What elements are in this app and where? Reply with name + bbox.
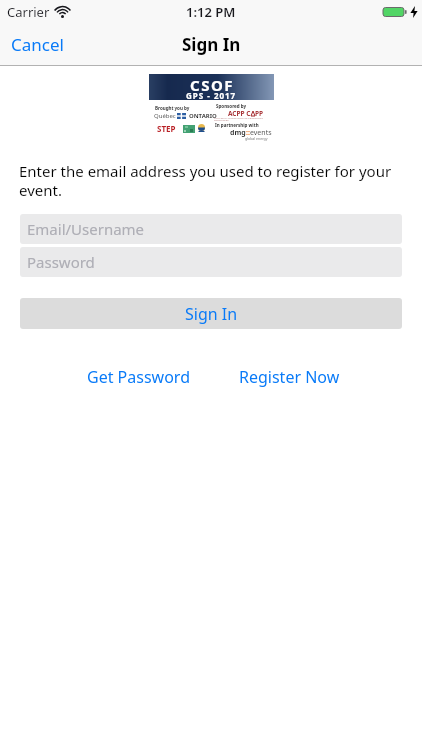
staticText: Get Password <box>87 366 190 388</box>
staticText: In partnership with <box>215 122 259 128</box>
staticText: CSOF <box>190 75 234 95</box>
staticText: Enter the email address you used to regi… <box>19 161 403 200</box>
staticText: Cancel <box>11 33 64 56</box>
staticText: Brought you by <box>155 105 190 111</box>
staticText: Sign In <box>182 33 241 56</box>
button[interactable]: Password <box>20 247 402 277</box>
button[interactable]: Get Password <box>87 366 190 388</box>
staticText: global energy <box>245 136 268 141</box>
staticText: 1:12 PM <box>186 3 236 21</box>
staticText: STEP <box>157 123 176 134</box>
staticText: Carrier <box>7 3 50 21</box>
staticText: PP <box>255 109 264 118</box>
staticText: events <box>250 128 272 138</box>
staticText: Québec <box>154 112 176 120</box>
staticText: :: <box>246 128 250 138</box>
button[interactable]: Cancel <box>11 33 64 56</box>
staticText: Password <box>27 252 95 272</box>
button[interactable]: Register Now <box>239 366 340 388</box>
staticText: Sign In <box>185 303 238 325</box>
staticText: Email/Username <box>27 219 145 239</box>
staticText: ONTARIO <box>189 112 217 120</box>
staticText: ACPP C <box>228 109 251 118</box>
button[interactable]: Email/Username <box>20 214 402 244</box>
staticText: GPS - 2017 <box>186 90 237 101</box>
staticText: Register Now <box>239 366 340 388</box>
button[interactable]: Sign In <box>20 298 402 329</box>
staticText: dmg <box>230 128 246 138</box>
staticText: CANADIAN ASSOCIATION OF PETROLEUM PRODUC… <box>214 116 272 122</box>
staticText: Sponsored by <box>216 103 247 109</box>
